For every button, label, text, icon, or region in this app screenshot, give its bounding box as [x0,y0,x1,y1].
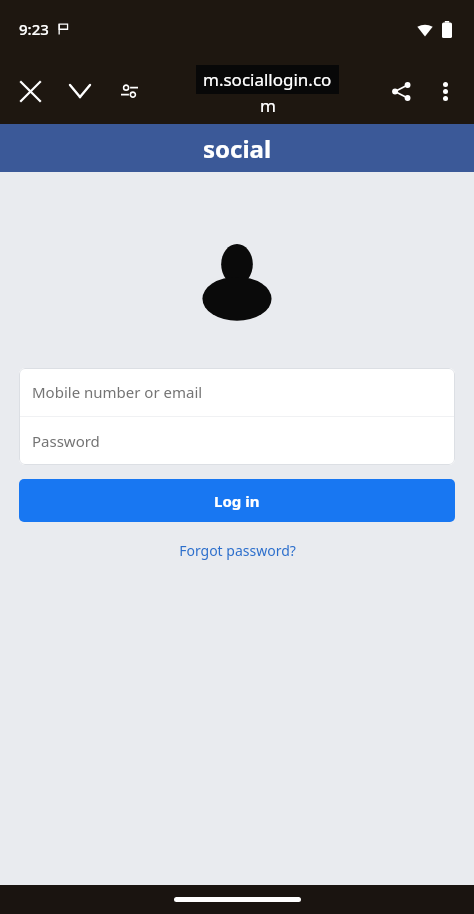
button[interactable]: More options [426,72,464,110]
button[interactable]: Log in [19,479,455,522]
staticText: Mobile number or email [32,382,203,402]
staticText: social [203,132,272,165]
button[interactable]: m.sociallogin.co [152,58,382,124]
staticText: Password [32,431,100,451]
staticText: 9:23 [19,19,49,39]
button[interactable]: Share [382,72,420,110]
button[interactable]: Password [19,417,455,465]
staticText: m [260,94,276,117]
button[interactable]: Expand [62,73,98,109]
staticText: m.sociallogin.co [203,68,332,91]
button[interactable]: Mobile number or email [19,368,455,416]
button[interactable]: Page info [112,74,146,108]
staticText: Log in [214,491,260,511]
staticText: Forgot password? [179,541,296,560]
button[interactable]: Close [12,73,48,109]
button[interactable]: Forgot password? [169,537,306,564]
